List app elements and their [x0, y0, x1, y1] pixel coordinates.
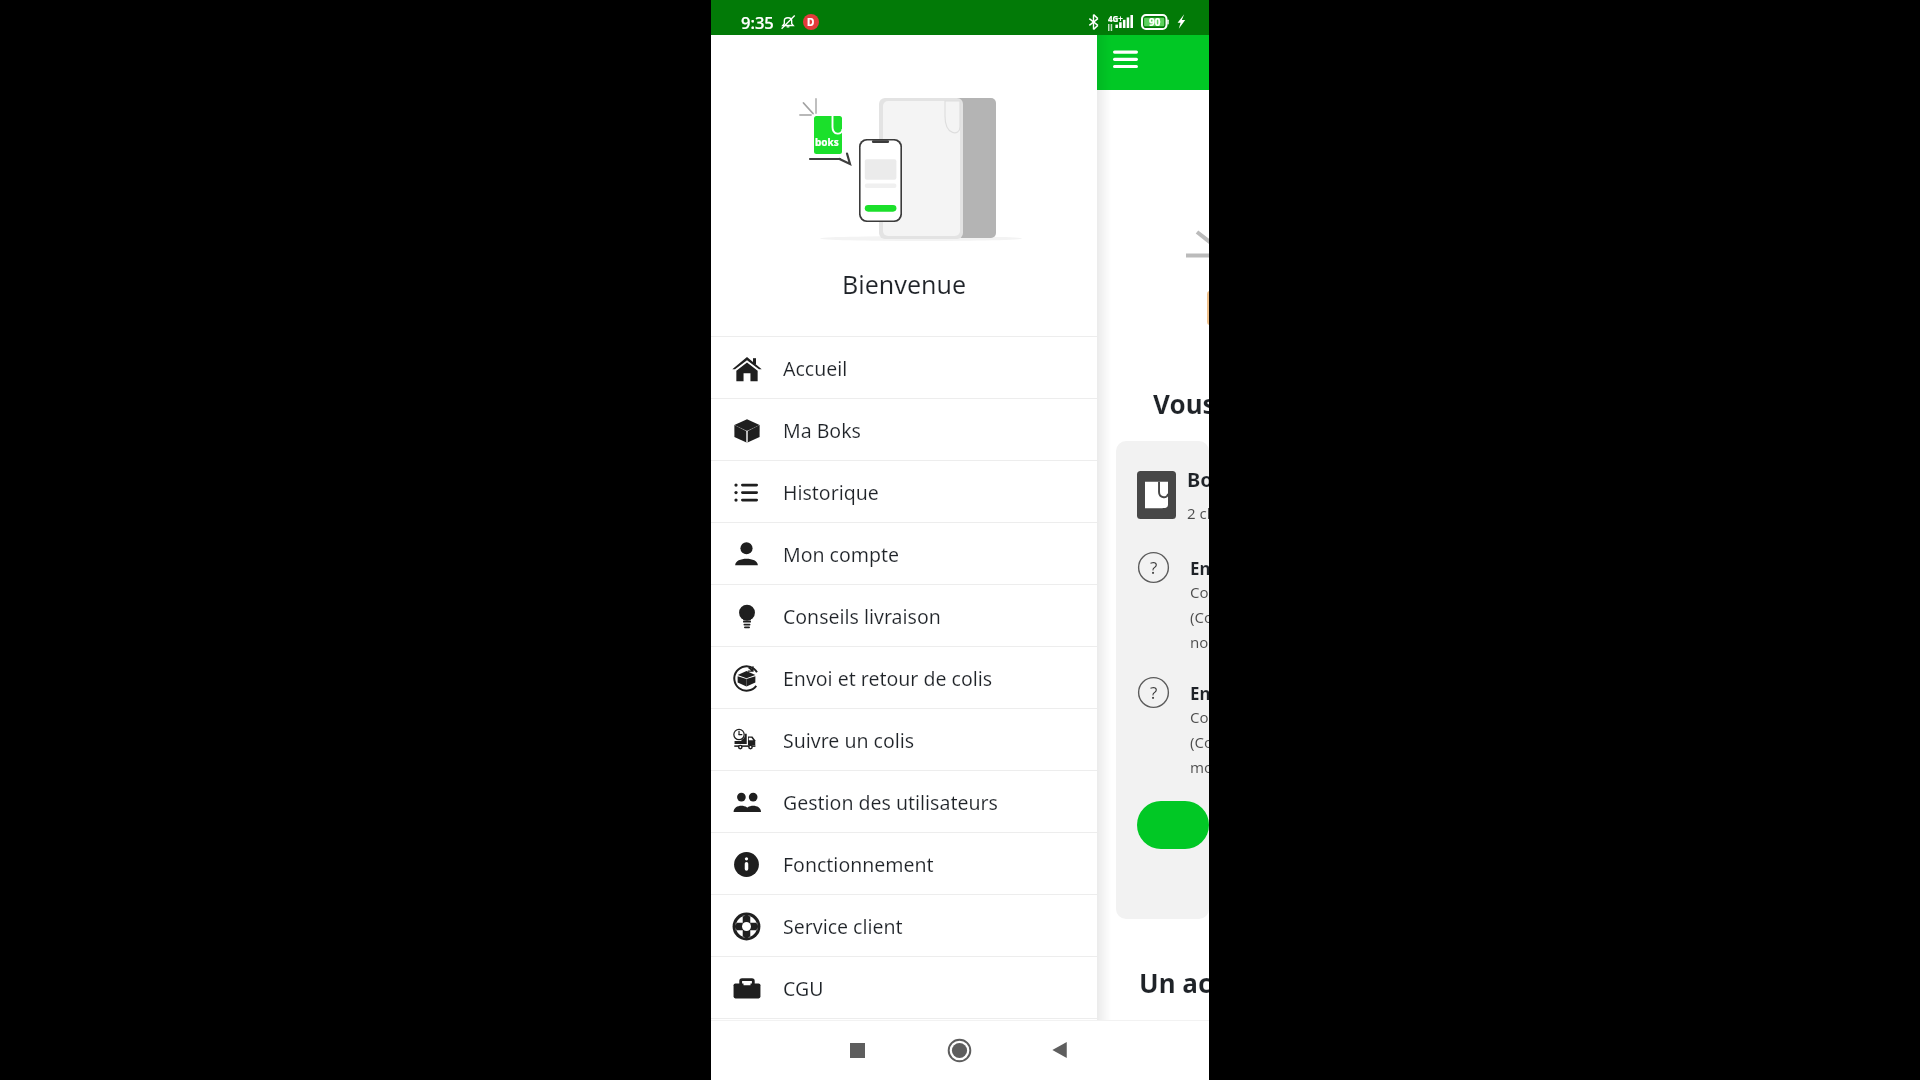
staticText: boks — [815, 135, 839, 149]
staticText: Un achat en cours ? — [1139, 965, 1209, 1000]
button[interactable]: Back — [1039, 1028, 1083, 1072]
staticText: Suivre un colis — [783, 727, 915, 754]
staticText: nouveau — [1190, 632, 1209, 652]
button[interactable]: Suivre un colis — [711, 709, 1097, 771]
staticText: Accueil — [783, 355, 848, 382]
staticText: ? — [1150, 556, 1158, 579]
button[interactable]: Open navigation drawer — [1101, 35, 1149, 83]
staticText: En attente — [1190, 682, 1209, 705]
button[interactable]: Ma Boks — [711, 399, 1097, 461]
staticText: 90 — [1149, 15, 1161, 29]
staticText: CGU — [783, 975, 824, 1002]
staticText: Mon compte — [783, 541, 900, 568]
staticText: (Code de — [1190, 732, 1209, 752]
staticText: ? — [1150, 681, 1158, 704]
staticText: Ma Boks — [783, 417, 861, 444]
button[interactable]: Accueil — [711, 337, 1097, 399]
staticText: mobile) — [1190, 757, 1209, 777]
staticText: Historique — [783, 479, 879, 506]
staticText: Envoi et retour de colis — [783, 665, 993, 692]
staticText: Connectez — [1190, 582, 1209, 602]
button[interactable]: Historique — [711, 461, 1097, 523]
button[interactable]: Recent apps — [835, 1028, 879, 1072]
button[interactable]: Fonctionnement — [711, 833, 1097, 895]
staticText: Bienvenue — [842, 267, 967, 301]
button[interactable] — [1137, 801, 1209, 849]
staticText: Connectez — [1190, 707, 1209, 727]
staticText: En attente — [1190, 557, 1209, 580]
button[interactable]: Service client — [711, 895, 1097, 957]
staticText: Conseils livraison — [783, 603, 941, 630]
button[interactable]: Envoi et retour de colis — [711, 647, 1097, 709]
staticText: 2 changements — [1187, 503, 1209, 523]
staticText: Service client — [783, 913, 903, 940]
button[interactable]: Mon compte — [711, 523, 1097, 585]
staticText: D — [807, 15, 815, 29]
button[interactable]: Gestion des utilisateurs — [711, 771, 1097, 833]
staticText: (Code de — [1190, 607, 1209, 627]
staticText: Gestion des utilisateurs — [783, 789, 998, 816]
button[interactable]: CGU — [711, 957, 1097, 1019]
staticText: 9:35 — [741, 11, 774, 33]
staticText: Boks n°1 — [1187, 466, 1209, 493]
staticText: 4G+ — [1108, 13, 1123, 24]
button[interactable]: Conseils livraison — [711, 585, 1097, 647]
button[interactable]: Home — [937, 1028, 981, 1072]
staticText: Vous avez une Boks ? — [1153, 386, 1209, 421]
staticText: Fonctionnement — [783, 851, 934, 878]
